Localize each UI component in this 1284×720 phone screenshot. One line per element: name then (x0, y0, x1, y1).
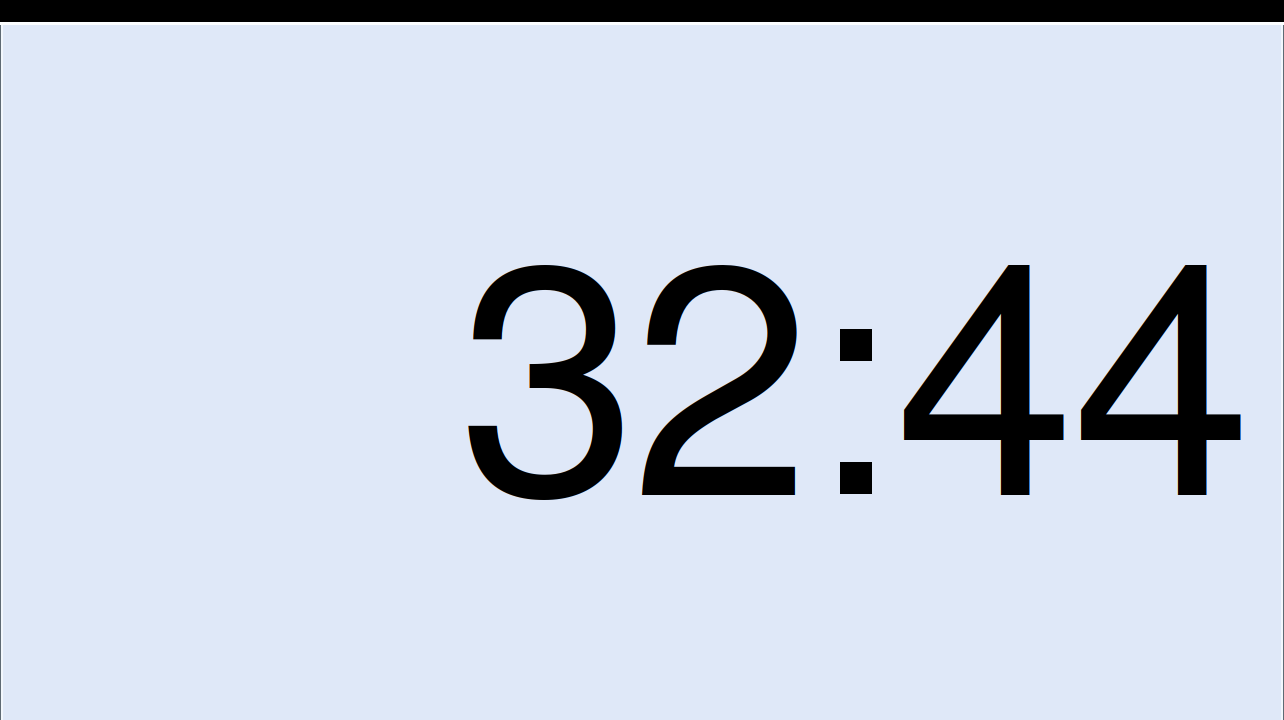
staticText: 2 (631, 123, 811, 587)
button[interactable]: Timer, 32:44 remaining (0, 22, 1284, 720)
staticText: 3 (458, 123, 638, 587)
staticText: 4 (1072, 123, 1252, 587)
staticText: 4 (895, 123, 1075, 587)
